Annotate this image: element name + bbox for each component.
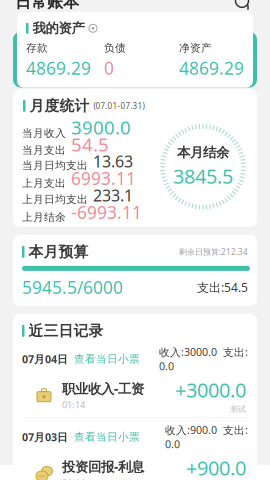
staticText: 6993.11 (71, 167, 136, 190)
staticText: 3900.0 (71, 115, 131, 140)
staticText: 01:14 (62, 476, 85, 480)
staticText: 01:14 (62, 398, 85, 411)
staticText: 存款 (26, 41, 48, 55)
staticText: 4869.29 (26, 57, 91, 80)
staticText: 近三日记录 (28, 322, 103, 340)
button[interactable]: 我的资产 (17, 12, 253, 88)
button[interactable]: Search (231, 0, 255, 14)
staticText: 0 (104, 57, 114, 80)
staticText: 我的资产 (32, 20, 84, 36)
staticText: 07月03日 (22, 430, 68, 444)
staticText: 职业收入-工资 (62, 380, 144, 397)
staticText: 5945.5/6000 (22, 276, 123, 299)
staticText: 当月日均支出 (22, 159, 88, 172)
staticText: 本月结余 (177, 144, 229, 161)
staticText: 4869.29 (179, 57, 244, 80)
staticText: 3845.5 (173, 163, 233, 189)
staticText: 收入:3000.0 支出:0.0 (159, 345, 248, 373)
button[interactable]: 本月预算 (13, 235, 257, 306)
staticText: 月度统计 (29, 97, 89, 115)
staticText: 上月结余 (22, 211, 66, 224)
staticText: 当月支出 (22, 144, 66, 157)
button[interactable]: 职业收入-工资 (22, 378, 248, 412)
staticText: 233.1 (93, 185, 133, 206)
staticText: 净资产 (179, 41, 212, 55)
staticText: 剩余日预算:212.34 (179, 246, 248, 257)
staticText: 13.63 (93, 151, 133, 172)
staticText: 日常账本 (15, 0, 79, 12)
staticText: 54.5 (71, 132, 109, 157)
button[interactable]: 查看当日小票 (74, 430, 140, 443)
staticText: 投资回报-利息 (62, 458, 144, 475)
staticText: 收入:900.0 支出:0.0 (165, 423, 248, 451)
button[interactable]: 查看当日小票 (74, 352, 140, 366)
staticText: 上月支出 (22, 177, 66, 190)
staticText: 负债 (104, 41, 126, 55)
staticText: 支出:54.5 (197, 279, 248, 295)
staticText: +900.0 (186, 454, 246, 480)
staticText: 测试 (230, 404, 246, 414)
button[interactable]: 投资回报-利息 (22, 456, 248, 480)
staticText: 查看当日小票 (74, 430, 140, 443)
staticText: 本月预算 (28, 243, 88, 261)
staticText: (07.01-07.31) (93, 100, 144, 111)
staticText: 07月04日 (22, 352, 68, 366)
staticText: 当月收入 (22, 127, 66, 140)
staticText: 上月日均支出 (22, 193, 88, 206)
staticText: +3000.0 (175, 376, 246, 403)
staticText: -6993.11 (71, 201, 142, 224)
staticText: 查看当日小票 (74, 352, 140, 366)
